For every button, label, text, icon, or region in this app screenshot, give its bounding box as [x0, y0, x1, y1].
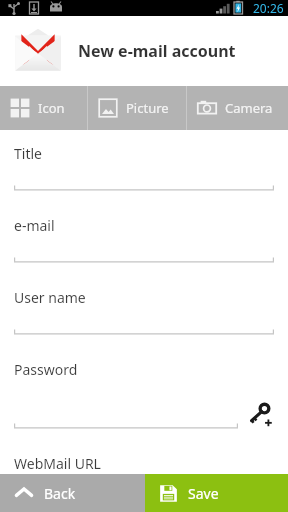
staticText: Icon	[38, 99, 65, 117]
button[interactable]: Back	[0, 474, 145, 512]
button[interactable]: Save	[145, 474, 288, 512]
button[interactable]: Picture	[88, 86, 186, 130]
staticText: User name	[14, 288, 86, 307]
staticText: New e-mail account	[78, 40, 236, 62]
staticText: Save	[188, 484, 219, 503]
staticText: e-mail	[14, 216, 55, 235]
staticText: Camera	[225, 99, 273, 117]
staticText: Back	[44, 484, 76, 503]
staticText: Title	[14, 144, 42, 163]
button[interactable]: e-mail	[14, 216, 274, 288]
staticText: Picture	[126, 99, 169, 117]
staticText: Password	[14, 360, 78, 379]
staticText: 20:26	[253, 0, 284, 16]
button[interactable]: Camera	[187, 86, 288, 130]
button[interactable]: Icon	[0, 86, 87, 130]
button[interactable]: Title	[14, 144, 274, 216]
staticText: WebMail URL	[14, 454, 101, 473]
button[interactable]	[14, 423, 238, 429]
button[interactable]: Generate password	[246, 401, 274, 429]
button[interactable]: User name	[14, 288, 274, 360]
other: Gmail	[12, 25, 64, 77]
